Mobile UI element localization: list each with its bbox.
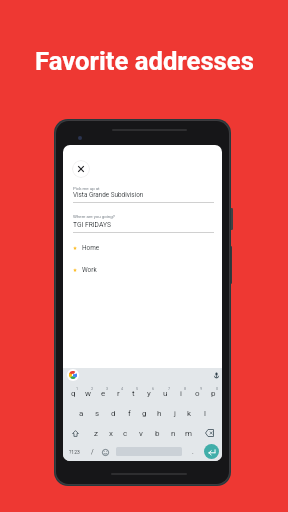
staticText: Favorite addresses [35,46,254,76]
staticText: u [163,389,168,398]
button[interactable]: Work [63,263,222,277]
staticText: s [95,409,100,418]
staticText: n [171,429,176,438]
button[interactable]: q [66,383,81,403]
staticText: k [187,409,192,418]
button[interactable]: l [197,403,212,423]
button[interactable]: x [103,423,118,443]
staticText: 0 [216,386,219,390]
staticText: TGI FRIDAYS [73,221,111,229]
staticText: 8 [184,386,187,390]
staticText: 6 [152,386,155,390]
staticText: o [195,389,200,398]
staticText: j [174,409,176,418]
staticText: p [211,389,216,398]
staticText: . [192,448,194,456]
button[interactable]: Volume [226,246,232,284]
button[interactable]: Voice input [212,370,221,379]
staticText: 5 [136,386,139,390]
button[interactable]: j [167,403,182,423]
button[interactable]: d [105,403,121,423]
button[interactable]: Pick me up at [63,181,222,201]
staticText: l [204,409,206,418]
staticText: z [94,429,98,438]
button[interactable]: / [86,446,98,458]
staticText: Vista Grande Subdivision [73,191,144,198]
staticText: 7 [168,386,171,390]
staticText: i [180,389,182,398]
staticText: v [139,429,143,438]
staticText: e [101,389,106,398]
button[interactable]: Close [72,160,90,178]
staticText: h [157,409,162,418]
staticText: c [123,429,128,438]
staticText: Pick me up at [73,186,100,191]
button[interactable]: i [173,383,189,403]
button[interactable]: w [81,383,96,403]
staticText: f [128,409,131,418]
button[interactable]: e [96,383,111,403]
button[interactable]: v [133,423,149,443]
staticText: Work [82,266,97,274]
button[interactable]: f [121,403,137,423]
button[interactable]: k [182,403,197,423]
staticText: 1 [76,386,79,390]
button[interactable]: Shift [63,423,88,443]
staticText: w [85,389,92,398]
staticText: a [79,409,84,418]
button[interactable]: s [89,403,105,423]
button[interactable]: Enter [204,444,219,459]
staticText: g [142,409,147,418]
button[interactable]: r [111,383,126,403]
button[interactable]: Google search [67,369,79,381]
button[interactable]: b [149,423,165,443]
button[interactable]: t [126,383,141,403]
button[interactable]: g [137,403,152,423]
staticText: x [109,429,113,438]
staticText: t [132,389,135,398]
staticText: b [155,429,160,438]
button[interactable]: c [118,423,133,443]
staticText: Where are you going? [73,214,115,219]
button[interactable]: Backspace [197,423,222,443]
button[interactable]: z [88,423,103,443]
button[interactable]: u [157,383,173,403]
button[interactable]: Home [63,241,222,255]
button[interactable]: Power [226,208,233,230]
staticText: 2 [91,386,94,390]
button[interactable]: Emoji [99,446,111,458]
staticText: Home [82,244,100,252]
button[interactable]: m [181,423,197,443]
button[interactable]: h [152,403,167,423]
staticText: d [111,409,116,418]
button[interactable]: n [165,423,181,443]
staticText: r [117,389,120,398]
button[interactable]: p [205,383,221,403]
staticText: q [71,389,76,398]
staticText: y [147,389,151,398]
staticText: 3 [106,386,109,390]
staticText: 4 [121,386,124,390]
staticText: / [91,448,94,456]
button[interactable]: Where are you going? [63,209,222,230]
staticText: 9 [200,386,203,390]
button[interactable]: y [141,383,157,403]
button[interactable]: a [73,403,89,423]
staticText: m [185,429,193,438]
button[interactable]: o [189,383,205,403]
button[interactable]: ?123 [67,446,82,458]
staticText: ?123 [69,449,80,455]
button[interactable]: . [187,446,199,458]
